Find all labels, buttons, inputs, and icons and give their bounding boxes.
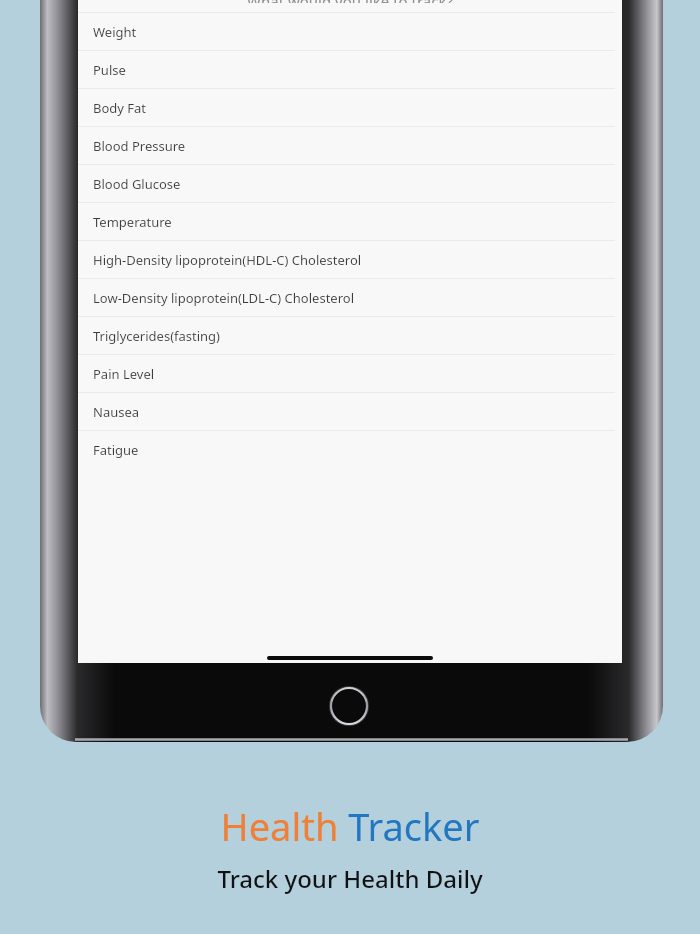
button[interactable]: Pain Level [78,354,622,392]
staticText: What would you like to track? [78,0,622,3]
button[interactable]: Home [329,686,369,726]
button[interactable]: Fatigue [78,430,622,468]
staticText: Pulse [93,61,126,79]
button[interactable]: Weight [78,12,622,50]
staticText: Temperature [93,213,172,231]
staticText: High-Density lipoprotein(HDL-C) Choleste… [93,251,362,269]
staticText: Track your Health Daily [0,862,700,895]
staticText: Blood Pressure [93,137,186,155]
staticText: Low-Density lipoprotein(LDL-C) Cholester… [93,289,354,307]
button[interactable]: Nausea [78,392,622,430]
staticText: Triglycerides(fasting) [93,327,220,345]
staticText: Nausea [93,403,140,421]
button[interactable]: Blood Glucose [78,164,622,202]
staticText: Pain Level [93,365,155,383]
staticText: Body Fat [93,99,147,117]
staticText: Weight [93,23,137,41]
button[interactable]: Body Fat [78,88,622,126]
staticText: Fatigue [93,441,139,459]
button[interactable]: Temperature [78,202,622,240]
staticText: Blood Glucose [93,175,181,193]
button[interactable]: Triglycerides(fasting) [78,316,622,354]
button[interactable]: High-Density lipoprotein(HDL-C) Choleste… [78,240,622,278]
button[interactable]: Low-Density lipoprotein(LDL-C) Cholester… [78,278,622,316]
staticText: Health Tracker [0,800,700,852]
button[interactable]: Blood Pressure [78,126,622,164]
button[interactable]: Pulse [78,50,622,88]
